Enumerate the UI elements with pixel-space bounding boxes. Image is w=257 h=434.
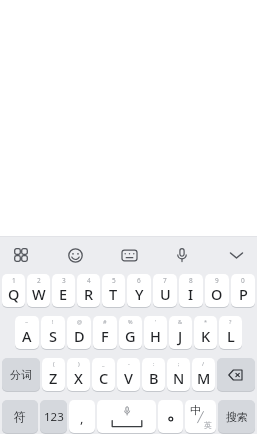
staticText: : bbox=[153, 360, 155, 367]
staticText: _ bbox=[102, 360, 105, 367]
staticText: 4 bbox=[87, 276, 91, 285]
staticText: ; bbox=[178, 360, 180, 367]
button[interactable] bbox=[66, 246, 84, 264]
button[interactable] bbox=[97, 400, 156, 433]
staticText: % bbox=[128, 318, 133, 325]
staticText: Y bbox=[135, 284, 144, 304]
button[interactable]: # bbox=[93, 316, 117, 349]
staticText: H bbox=[150, 326, 161, 346]
button[interactable]: ; bbox=[167, 358, 190, 391]
staticText: ( bbox=[53, 360, 55, 367]
button[interactable]: 5 bbox=[102, 274, 125, 307]
button[interactable]: 2 bbox=[27, 274, 50, 307]
staticText: 分词 bbox=[10, 368, 32, 382]
button[interactable]: 9 bbox=[205, 274, 229, 307]
staticText: O bbox=[211, 284, 223, 304]
staticText: 中 bbox=[190, 403, 201, 417]
button[interactable]: 符 bbox=[2, 400, 38, 433]
staticText: Q bbox=[8, 284, 20, 304]
staticText: J bbox=[178, 326, 183, 346]
staticText: S bbox=[49, 326, 57, 346]
staticText: Z bbox=[49, 368, 58, 388]
staticText: 9 bbox=[215, 276, 219, 285]
staticText: ! bbox=[52, 318, 54, 325]
staticText: 5 bbox=[112, 276, 116, 285]
staticText: * bbox=[204, 318, 208, 325]
staticText: ) bbox=[78, 360, 80, 367]
staticText: U bbox=[160, 284, 171, 304]
staticText: C bbox=[99, 368, 109, 388]
button[interactable] bbox=[217, 358, 255, 391]
staticText: 0 bbox=[241, 276, 245, 285]
button[interactable]: 0 bbox=[231, 274, 255, 307]
staticText: W bbox=[32, 284, 46, 304]
staticText: # bbox=[103, 318, 107, 325]
button[interactable]: , bbox=[69, 400, 95, 433]
button[interactable]: 1 bbox=[2, 274, 25, 307]
staticText: 符 bbox=[14, 409, 26, 424]
staticText: 7 bbox=[163, 276, 167, 285]
button[interactable]: & bbox=[169, 316, 192, 349]
button[interactable]: : bbox=[142, 358, 165, 391]
staticText: ~ bbox=[25, 318, 29, 325]
button[interactable] bbox=[12, 246, 30, 264]
button[interactable]: ' bbox=[144, 316, 167, 349]
button[interactable]: _ bbox=[92, 358, 115, 391]
button[interactable]: ~ bbox=[15, 316, 39, 349]
staticText: R bbox=[84, 284, 94, 304]
button[interactable]: - bbox=[117, 358, 140, 391]
button[interactable]: ! bbox=[41, 316, 65, 349]
button[interactable]: ) bbox=[67, 358, 90, 391]
staticText: A bbox=[22, 326, 32, 346]
staticText: T bbox=[109, 284, 118, 304]
button[interactable]: 分词 bbox=[2, 358, 40, 391]
staticText: N bbox=[173, 368, 185, 388]
staticText: 123 bbox=[44, 409, 64, 425]
button[interactable] bbox=[120, 246, 138, 264]
staticText: & bbox=[178, 318, 183, 325]
button[interactable]: % bbox=[119, 316, 142, 349]
staticText: ? bbox=[229, 318, 232, 325]
button[interactable]: 123 bbox=[40, 400, 67, 433]
button[interactable]: / bbox=[192, 358, 215, 391]
staticText: 6 bbox=[137, 276, 141, 285]
button[interactable]: 搜索 bbox=[218, 400, 255, 433]
staticText: V bbox=[124, 368, 133, 388]
staticText: 2 bbox=[37, 276, 41, 285]
button[interactable]: 中 bbox=[185, 400, 216, 433]
button[interactable]: * bbox=[194, 316, 217, 349]
button[interactable]: 6 bbox=[127, 274, 151, 307]
staticText: F bbox=[101, 326, 109, 346]
staticText: D bbox=[74, 326, 85, 346]
button[interactable]: ( bbox=[42, 358, 65, 391]
staticText: I bbox=[188, 284, 194, 304]
staticText: P bbox=[239, 284, 248, 304]
staticText: 英 bbox=[204, 420, 212, 430]
staticText: 搜索 bbox=[226, 410, 248, 424]
staticText: E bbox=[59, 284, 68, 304]
button[interactable]: 7 bbox=[153, 274, 177, 307]
staticText: - bbox=[128, 360, 130, 367]
button[interactable]: @ bbox=[67, 316, 91, 349]
staticText: G bbox=[125, 326, 136, 346]
staticText: @ bbox=[77, 318, 82, 325]
staticText: ' bbox=[155, 318, 157, 325]
button[interactable]: 4 bbox=[77, 274, 100, 307]
staticText: 8 bbox=[189, 276, 193, 285]
staticText: K bbox=[201, 326, 211, 346]
button[interactable]: 8 bbox=[179, 274, 203, 307]
staticText: B bbox=[149, 368, 159, 388]
button[interactable]: ? bbox=[219, 316, 242, 349]
staticText: L bbox=[227, 326, 235, 346]
staticText: 1 bbox=[12, 276, 16, 285]
staticText: , bbox=[80, 409, 84, 427]
staticText: M bbox=[197, 368, 211, 388]
button[interactable] bbox=[227, 246, 245, 264]
button[interactable] bbox=[173, 246, 191, 264]
button[interactable]: 3 bbox=[52, 274, 75, 307]
staticText: X bbox=[74, 368, 83, 388]
button[interactable] bbox=[158, 400, 183, 433]
staticText: / bbox=[202, 360, 205, 367]
staticText: 3 bbox=[62, 276, 66, 285]
